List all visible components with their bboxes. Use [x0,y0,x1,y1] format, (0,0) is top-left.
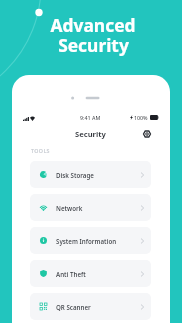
staticText: Network [56,204,83,212]
button[interactable]: Settings [141,128,153,139]
button[interactable]: Disk Storage [30,161,151,188]
staticText: Advanced [50,13,136,37]
staticText: Disk Storage [56,171,94,179]
staticText: System Information [56,237,117,245]
staticText: TOOLS [31,147,50,154]
button[interactable]: Anti Theft [30,260,151,287]
staticText: Security [58,33,129,57]
button[interactable]: QR Scanner [30,293,151,320]
staticText: 100% [134,114,148,121]
staticText: 9:41 AM [80,114,101,121]
staticText: QR Scanner [56,303,91,311]
staticText: Security [75,129,106,139]
staticText: Anti Theft [56,270,86,278]
button[interactable]: Network [30,194,151,221]
button[interactable]: System Information [30,227,151,254]
